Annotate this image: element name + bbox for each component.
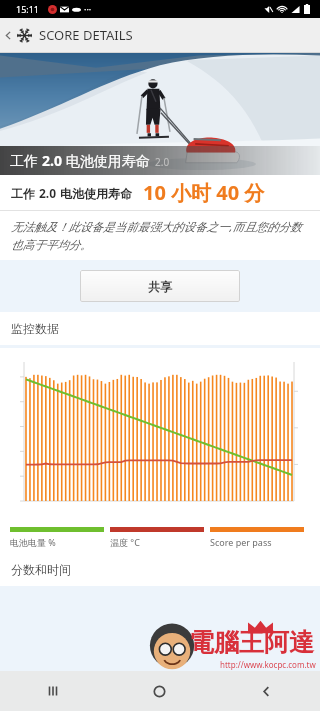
button[interactable]: 共享	[80, 270, 240, 302]
staticText: 分数和时间	[11, 562, 71, 577]
staticText: 工作	[11, 185, 39, 201]
staticText: 电池电量 %	[10, 536, 56, 548]
button[interactable]: Recent apps	[0, 671, 106, 711]
staticText: http://www.kocpc.com.tw	[220, 659, 316, 670]
staticText: Score per pass	[210, 536, 272, 548]
staticText: 2.0	[39, 185, 57, 201]
staticText: 温度 °C	[110, 536, 140, 548]
staticText: 共享	[148, 279, 172, 294]
button[interactable]: Home	[106, 671, 213, 711]
button[interactable]: Back	[0, 18, 16, 52]
button[interactable]: Back	[213, 671, 320, 711]
staticText: SCORE DETAILS	[39, 26, 133, 44]
staticText: 2.0	[42, 151, 62, 170]
staticText: 监控数据	[11, 321, 59, 336]
staticText: 15:11	[16, 3, 40, 15]
staticText: 2.0	[155, 155, 170, 169]
staticText: 无法触及！此设备是当前最强大的设备之一,而且您的分数也高于平均分。	[11, 219, 309, 252]
staticText: 电池使用寿命	[62, 151, 150, 170]
staticText: ···	[84, 3, 92, 15]
staticText: 10 小时 40 分	[143, 179, 265, 206]
staticText: 工作	[10, 151, 42, 170]
staticText: 電腦王阿達	[189, 627, 314, 658]
staticText: 电池使用寿命	[57, 185, 133, 201]
